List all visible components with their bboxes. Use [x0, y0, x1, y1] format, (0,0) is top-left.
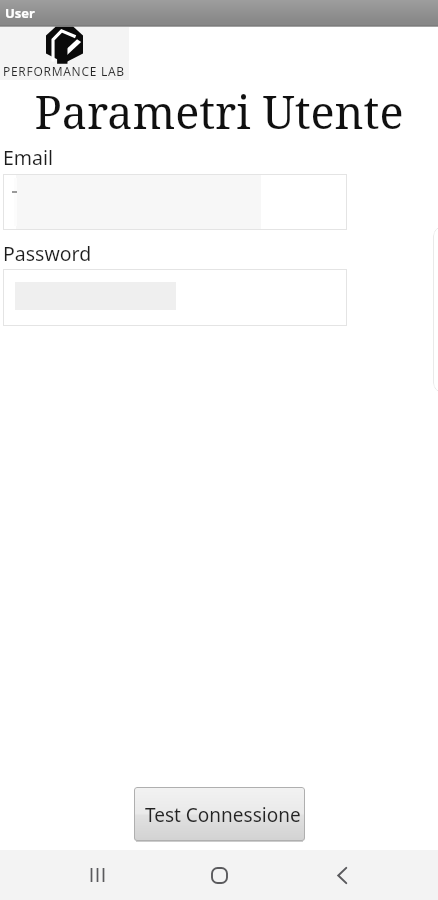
button[interactable]: [3, 269, 347, 326]
button[interactable]: Back: [317, 851, 365, 899]
staticText: Password: [3, 240, 92, 267]
button[interactable]: Recent apps: [74, 851, 122, 899]
staticText: Email: [3, 144, 54, 171]
staticText: Parametri Utente: [0, 81, 438, 142]
button[interactable]: Test Connessione: [134, 787, 305, 841]
staticText: Test Connessione: [145, 802, 301, 828]
staticText: PERFORMANCE LAB: [3, 63, 125, 79]
button[interactable]: [3, 174, 347, 230]
staticText: User: [5, 4, 35, 22]
button[interactable]: Home: [195, 851, 243, 899]
